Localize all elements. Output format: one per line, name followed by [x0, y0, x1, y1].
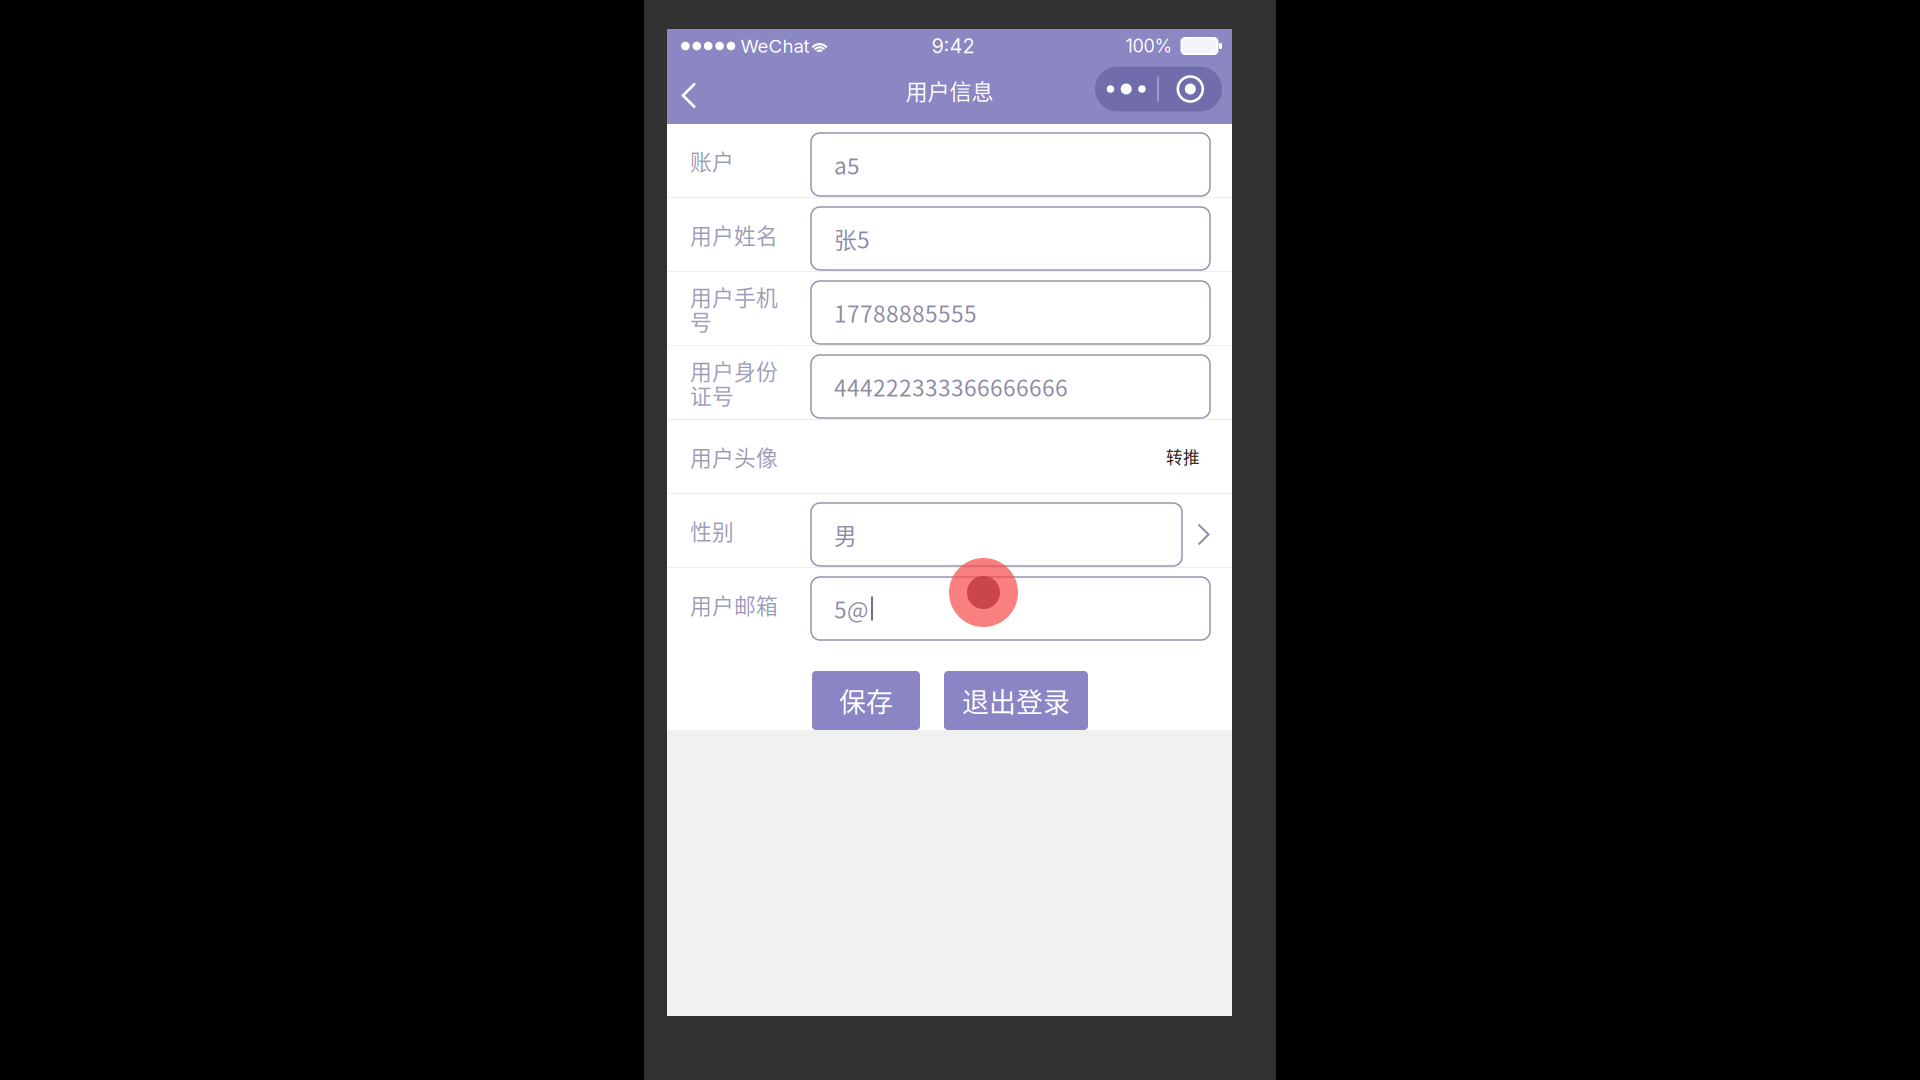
staticText: a5 — [834, 148, 860, 181]
staticText: 账户 — [690, 145, 734, 176]
staticText: 保存 — [839, 681, 893, 720]
staticText: 9:42 — [931, 34, 974, 58]
staticText: 5@ — [834, 592, 868, 625]
staticText: 用户头像 — [690, 441, 778, 472]
staticText: 444222333366666666 — [834, 370, 1068, 403]
staticText: 17788885555 — [834, 296, 977, 329]
button[interactable]: Back — [667, 72, 711, 118]
staticText: 用户手机 号 — [690, 280, 778, 336]
button[interactable]: 用户邮箱 — [667, 568, 1232, 641]
staticText: 100% — [1125, 35, 1172, 57]
button[interactable]: 用户手机 号 — [667, 272, 1232, 345]
staticText: 用户邮箱 — [690, 589, 778, 620]
button[interactable]: 性别 — [667, 494, 1232, 567]
staticText: 性别 — [690, 515, 734, 546]
button[interactable]: 用户头像 — [667, 420, 1232, 493]
button[interactable]: 退出登录 — [944, 671, 1088, 730]
staticText: 用户姓名 — [690, 219, 778, 250]
staticText: 用户信息 — [905, 74, 993, 106]
button[interactable]: Mini program menu — [1095, 66, 1222, 111]
staticText: 转推 — [1166, 444, 1200, 468]
staticText: 张5 — [834, 222, 870, 255]
button[interactable]: 用户姓名 — [667, 198, 1232, 271]
button[interactable]: 用户身份 证号 — [667, 346, 1232, 419]
staticText: 退出登录 — [962, 681, 1070, 720]
button[interactable]: 保存 — [812, 671, 920, 730]
staticText: 男 — [834, 518, 857, 551]
staticText: WeChat — [740, 35, 809, 57]
staticText: 用户身份 证号 — [690, 354, 778, 410]
button[interactable]: 账户 — [667, 124, 1232, 197]
